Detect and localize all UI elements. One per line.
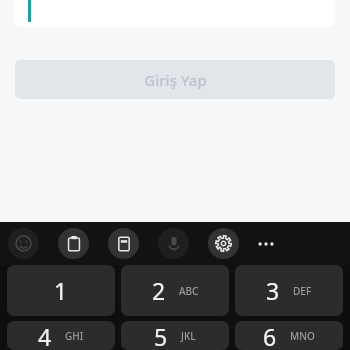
button[interactable]: Emoji (8, 228, 39, 259)
button[interactable]: 5 (121, 321, 229, 350)
staticText: GHI (65, 329, 84, 343)
staticText: Giriş Yap (144, 70, 207, 90)
button[interactable]: 1 (7, 265, 115, 316)
staticText: 5 (154, 321, 168, 350)
button[interactable]: Settings (208, 228, 239, 259)
button[interactable]: 6 (235, 321, 343, 350)
button[interactable]: 4 (7, 321, 115, 350)
button[interactable] (15, 0, 335, 27)
staticText: 3 (266, 275, 280, 306)
button[interactable]: 3 (235, 265, 343, 316)
button[interactable]: Voice input (158, 228, 189, 259)
staticText: 6 (263, 321, 277, 350)
staticText: 2 (152, 275, 166, 306)
button[interactable]: Giriş Yap (15, 60, 335, 99)
staticText: ABC (179, 284, 199, 298)
button[interactable]: Clipboard (58, 228, 89, 259)
staticText: 1 (54, 275, 68, 306)
staticText: JKL (181, 329, 196, 343)
button[interactable]: 2 (121, 265, 229, 316)
staticText: MNO (290, 329, 315, 343)
staticText: DEF (293, 284, 312, 298)
button[interactable]: Stickers (108, 228, 139, 259)
button[interactable]: More options (251, 229, 281, 259)
staticText: 4 (38, 321, 52, 350)
